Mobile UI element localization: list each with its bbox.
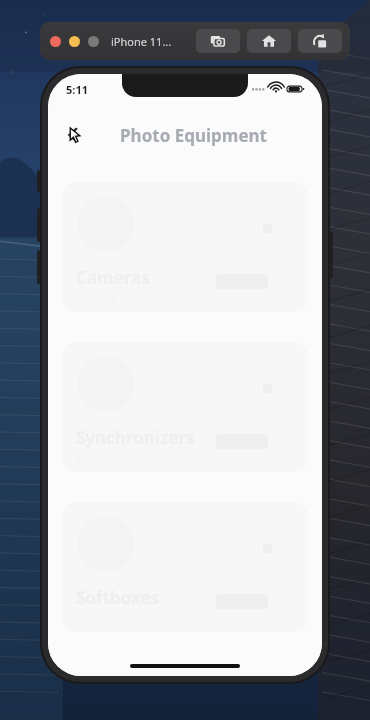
staticText: Photo Equipment (120, 124, 267, 147)
staticText: Cameras (76, 266, 150, 289)
button[interactable]: Screenshot (196, 29, 240, 53)
button[interactable]: Zoom (88, 36, 99, 47)
staticText: 5:11 (66, 82, 88, 97)
button[interactable]: Close (50, 36, 61, 47)
button[interactable]: Rotate (298, 29, 342, 53)
staticText: Synchronizers (76, 426, 195, 449)
button[interactable]: Minimise (69, 36, 80, 47)
staticText: Softboxes (76, 586, 160, 609)
button[interactable]: Home (247, 29, 291, 53)
staticText: iPhone 11... (111, 34, 172, 49)
button[interactable]: Back (56, 118, 90, 152)
